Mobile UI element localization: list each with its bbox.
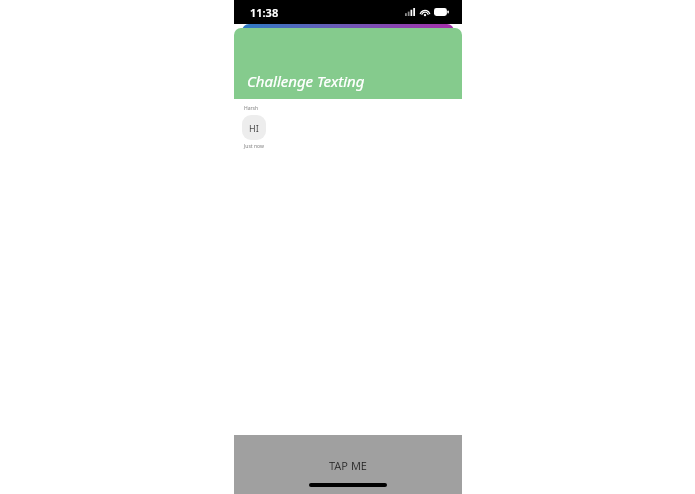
staticText: HI: [249, 122, 259, 134]
staticText: Challenge Texting: [247, 71, 365, 91]
staticText: TAP ME: [329, 458, 367, 473]
button[interactable]: TAP ME: [234, 435, 462, 494]
staticText: 11:38: [250, 5, 279, 20]
button[interactable]: HI: [242, 115, 266, 140]
other: Battery: [434, 8, 449, 16]
staticText: Harsh: [244, 105, 259, 112]
staticText: Just now: [244, 143, 264, 150]
other: Wi-Fi: [420, 8, 430, 16]
other: Cellular signal: [405, 8, 416, 16]
